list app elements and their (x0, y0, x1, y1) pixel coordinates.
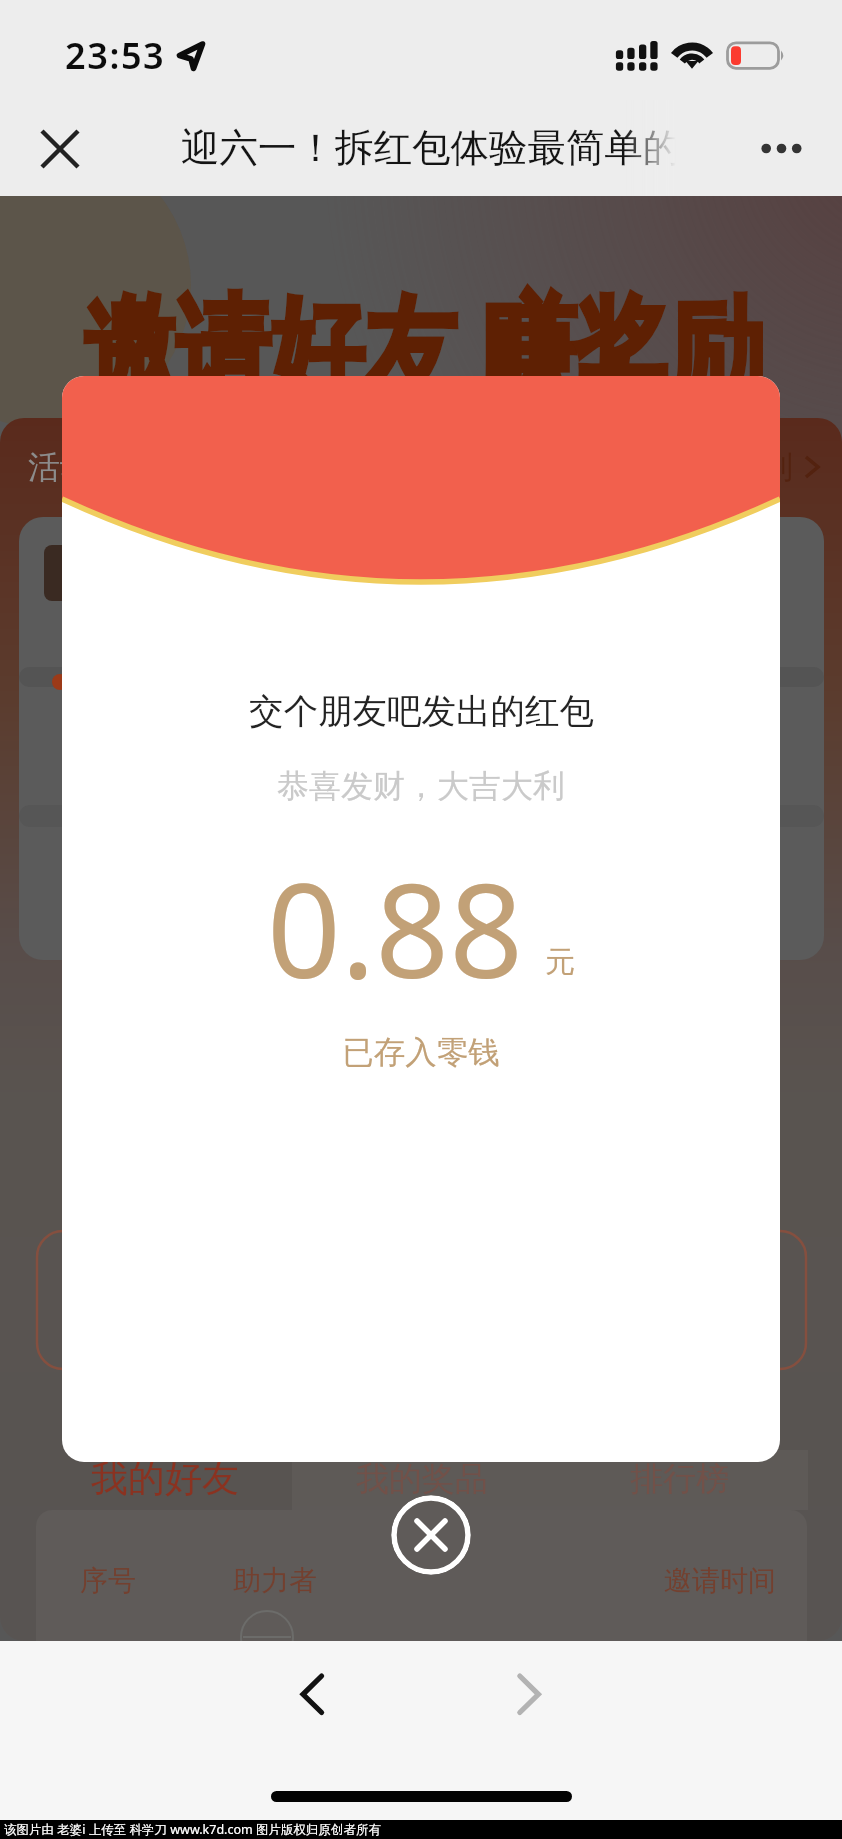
staticText: 恭喜发财，大吉大利 (277, 766, 565, 806)
staticText: 邀请时间 (664, 1563, 776, 1598)
staticText: 我的奖品 (356, 1458, 488, 1500)
staticText: 迎六一！拆红包体验最简单的 (181, 124, 682, 173)
staticText: 活动规则 (665, 447, 793, 487)
staticText: 助力者 (233, 1563, 317, 1598)
staticText: 排行榜 (630, 1458, 729, 1500)
button[interactable]: Back (272, 1654, 352, 1734)
button[interactable]: Close (34, 123, 86, 175)
staticText: 邀请好友 赚奖励 (82, 266, 762, 433)
staticText: 我的好友 (91, 1455, 239, 1502)
button[interactable]: Forward (489, 1654, 569, 1734)
staticText: 该图片由 老婆i 上传至 科学刀 www.k7d.com 图片版权归原创者所有 (4, 1821, 381, 1838)
staticText: 活动规则 (28, 447, 156, 487)
staticText: 序号 (80, 1563, 136, 1598)
staticText: 0.88 (267, 840, 523, 1016)
staticText: 元 (545, 943, 575, 981)
button[interactable]: More options (744, 128, 820, 168)
staticText: 交个朋友吧发出的红包 (249, 690, 594, 733)
staticText: 23:53 (65, 31, 166, 80)
staticText: 已存入零钱 (342, 1033, 500, 1073)
button[interactable]: Close red packet (391, 1495, 471, 1575)
